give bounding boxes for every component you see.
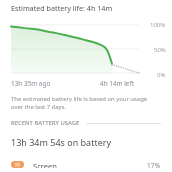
staticText: 100%	[150, 21, 166, 29]
staticText: 17%	[147, 161, 161, 168]
staticText: 13h 34m 54s on battery	[11, 136, 112, 148]
staticText: RECENT BATTERY USAGE	[11, 119, 80, 127]
staticText: 0%	[157, 71, 166, 79]
staticText: 13h 35m ago	[11, 79, 51, 88]
staticText: The estimated battery life is based on y…	[11, 95, 160, 111]
staticText: 50%	[154, 46, 166, 54]
staticText: Screen	[33, 161, 58, 168]
button[interactable]: Screen	[0, 159, 172, 172]
staticText: 4h 14m left	[100, 79, 134, 88]
staticText: Estimated battery life: 4h 14m	[11, 3, 113, 13]
